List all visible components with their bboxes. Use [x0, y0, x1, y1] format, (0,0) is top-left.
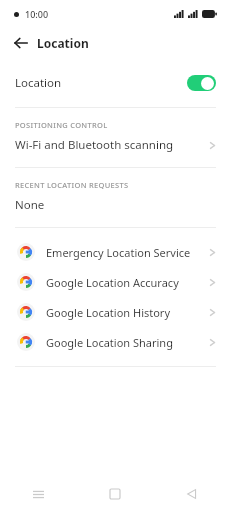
- staticText: POSITIONING CONTROL: [15, 120, 108, 130]
- button[interactable]: Location toggle: [187, 75, 216, 91]
- button[interactable]: Home: [77, 478, 153, 510]
- button[interactable]: Google Location History: [0, 297, 229, 327]
- staticText: None: [15, 197, 45, 213]
- button[interactable]: Google Location Sharing: [0, 327, 229, 357]
- button[interactable]: Recents: [0, 478, 77, 510]
- button[interactable]: Emergency Location Service: [0, 237, 229, 267]
- button[interactable]: Back: [153, 478, 229, 510]
- button[interactable]: Wi-Fi and Bluetooth scanning: [0, 130, 229, 160]
- staticText: 10:00: [25, 8, 49, 20]
- staticText: RECENT LOCATION REQUESTS: [15, 180, 129, 190]
- staticText: Wi-Fi and Bluetooth scanning: [15, 137, 209, 153]
- button[interactable]: Google Location Accuracy: [0, 267, 229, 297]
- staticText: Location: [15, 75, 187, 91]
- staticText: Google Location History: [46, 305, 209, 320]
- staticText: Location: [37, 35, 89, 51]
- button[interactable]: Back: [8, 30, 34, 56]
- button[interactable]: Location: [0, 59, 229, 107]
- staticText: Emergency Location Service: [46, 245, 209, 260]
- staticText: Google Location Sharing: [46, 335, 209, 350]
- staticText: Google Location Accuracy: [46, 275, 209, 290]
